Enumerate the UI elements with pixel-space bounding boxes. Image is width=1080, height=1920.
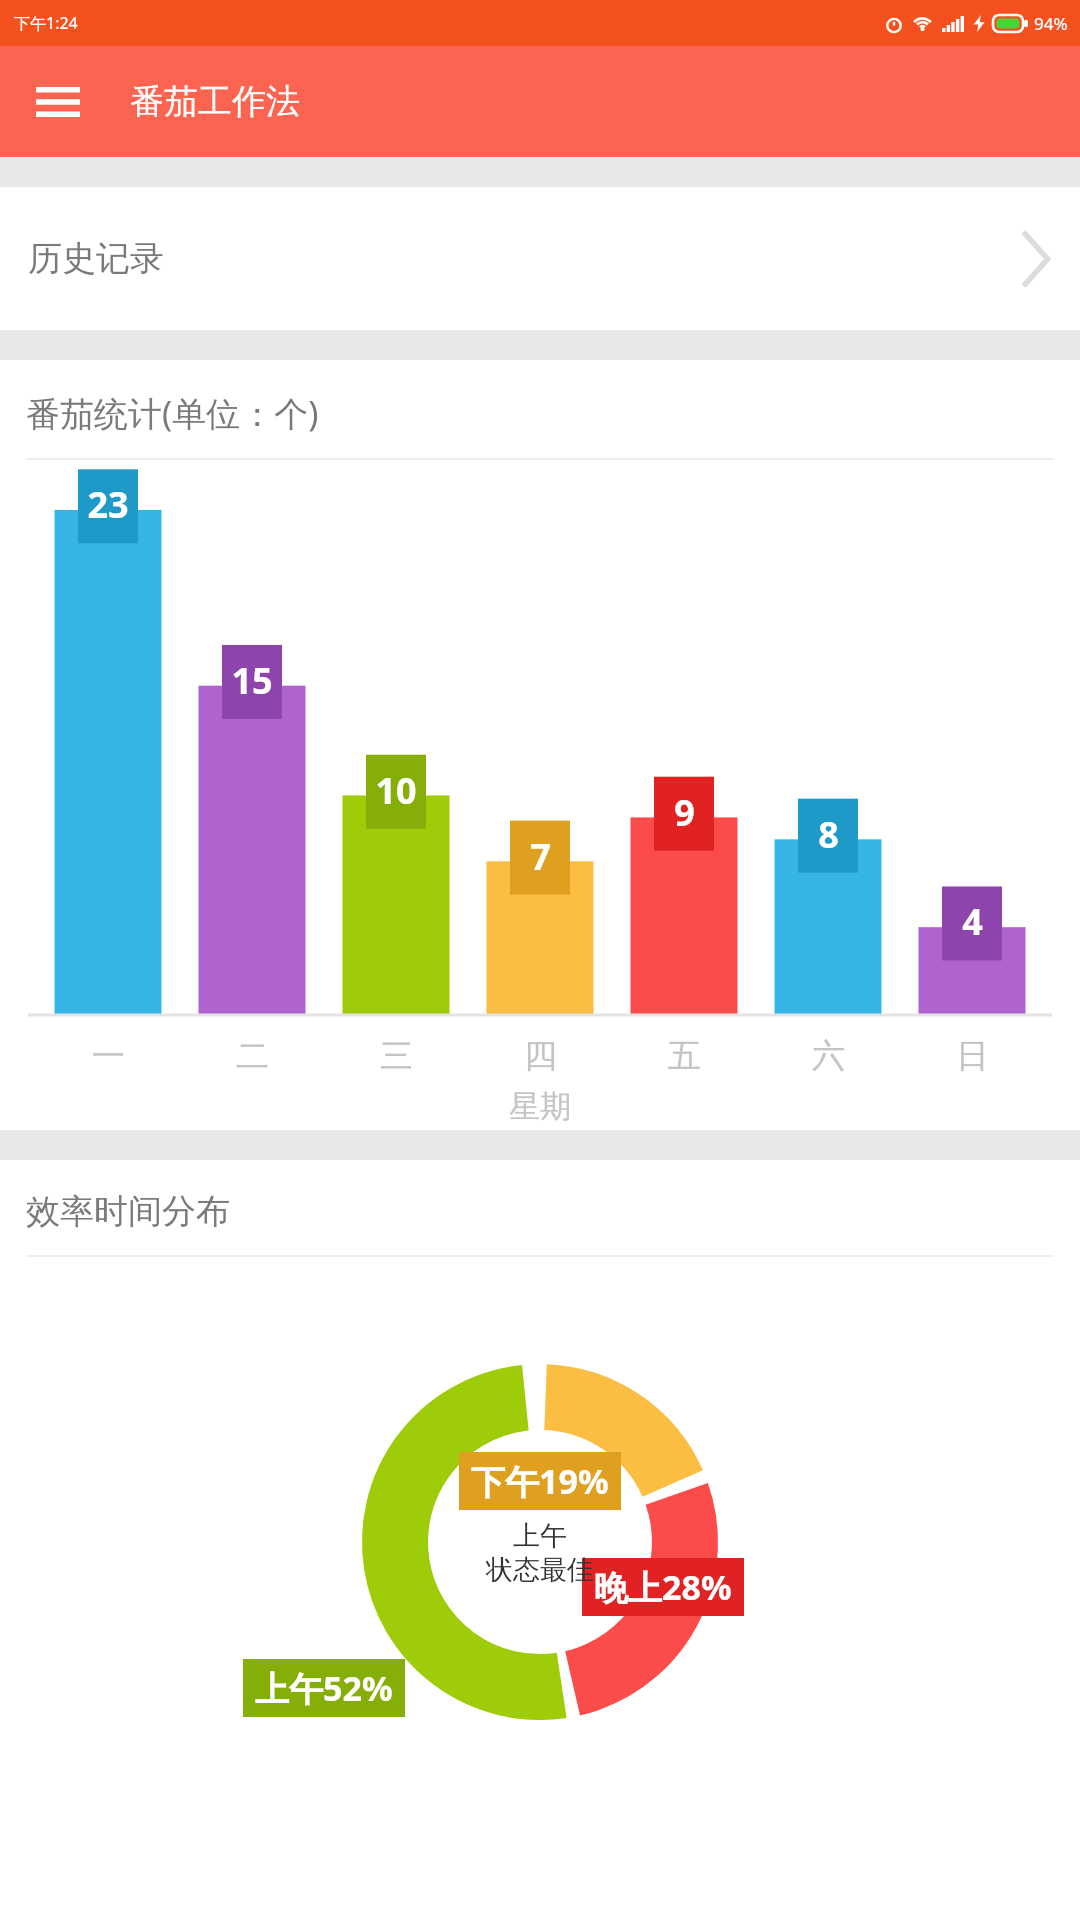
staticText: 10 [375, 766, 417, 815]
button[interactable]: 历史记录 [0, 187, 1080, 330]
staticText: 上午 [513, 1519, 567, 1553]
staticText: 五 [668, 1035, 701, 1077]
staticText: 效率时间分布 [26, 1190, 230, 1233]
staticText: 一 [92, 1035, 125, 1077]
staticText: 23 [87, 480, 129, 529]
staticText: 番茄统计(单位：个) [26, 390, 319, 436]
staticText: 7 [530, 832, 551, 881]
staticText: 9 [674, 788, 695, 837]
staticText: 二 [236, 1035, 269, 1077]
staticText: 上午52% [255, 1665, 393, 1711]
staticText: 晚上28% [594, 1564, 732, 1610]
staticText: 六 [812, 1035, 845, 1077]
staticText: 三 [380, 1035, 413, 1077]
staticText: 状态最佳 [486, 1553, 594, 1587]
staticText: 下午19% [471, 1458, 609, 1504]
staticText: 15 [231, 656, 273, 705]
staticText: 4 [962, 897, 983, 946]
staticText: 历史记录 [28, 237, 164, 280]
staticText: 日 [956, 1035, 989, 1077]
staticText: 下午1:24 [14, 12, 78, 34]
staticText: 星期 [509, 1087, 571, 1126]
staticText: 四 [524, 1035, 557, 1077]
staticText: 番茄工作法 [130, 80, 300, 123]
staticText: 8 [818, 810, 839, 859]
button[interactable]: Menu [22, 66, 94, 138]
staticText: 94% [1034, 12, 1068, 35]
